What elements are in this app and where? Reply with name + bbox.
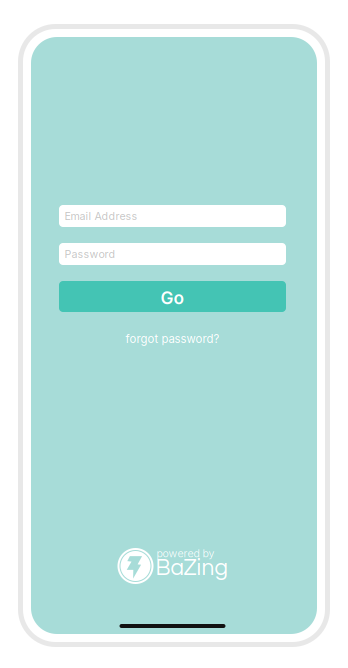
staticText: Email Address — [64, 209, 137, 222]
staticText: powered by — [156, 547, 214, 560]
button[interactable]: Go — [59, 281, 286, 312]
button[interactable]: forgot password? — [59, 332, 286, 346]
staticText: Go — [160, 287, 184, 308]
staticText: Password — [64, 247, 115, 260]
staticText: BaZing — [155, 556, 227, 580]
staticText: forgot password? — [125, 332, 219, 346]
